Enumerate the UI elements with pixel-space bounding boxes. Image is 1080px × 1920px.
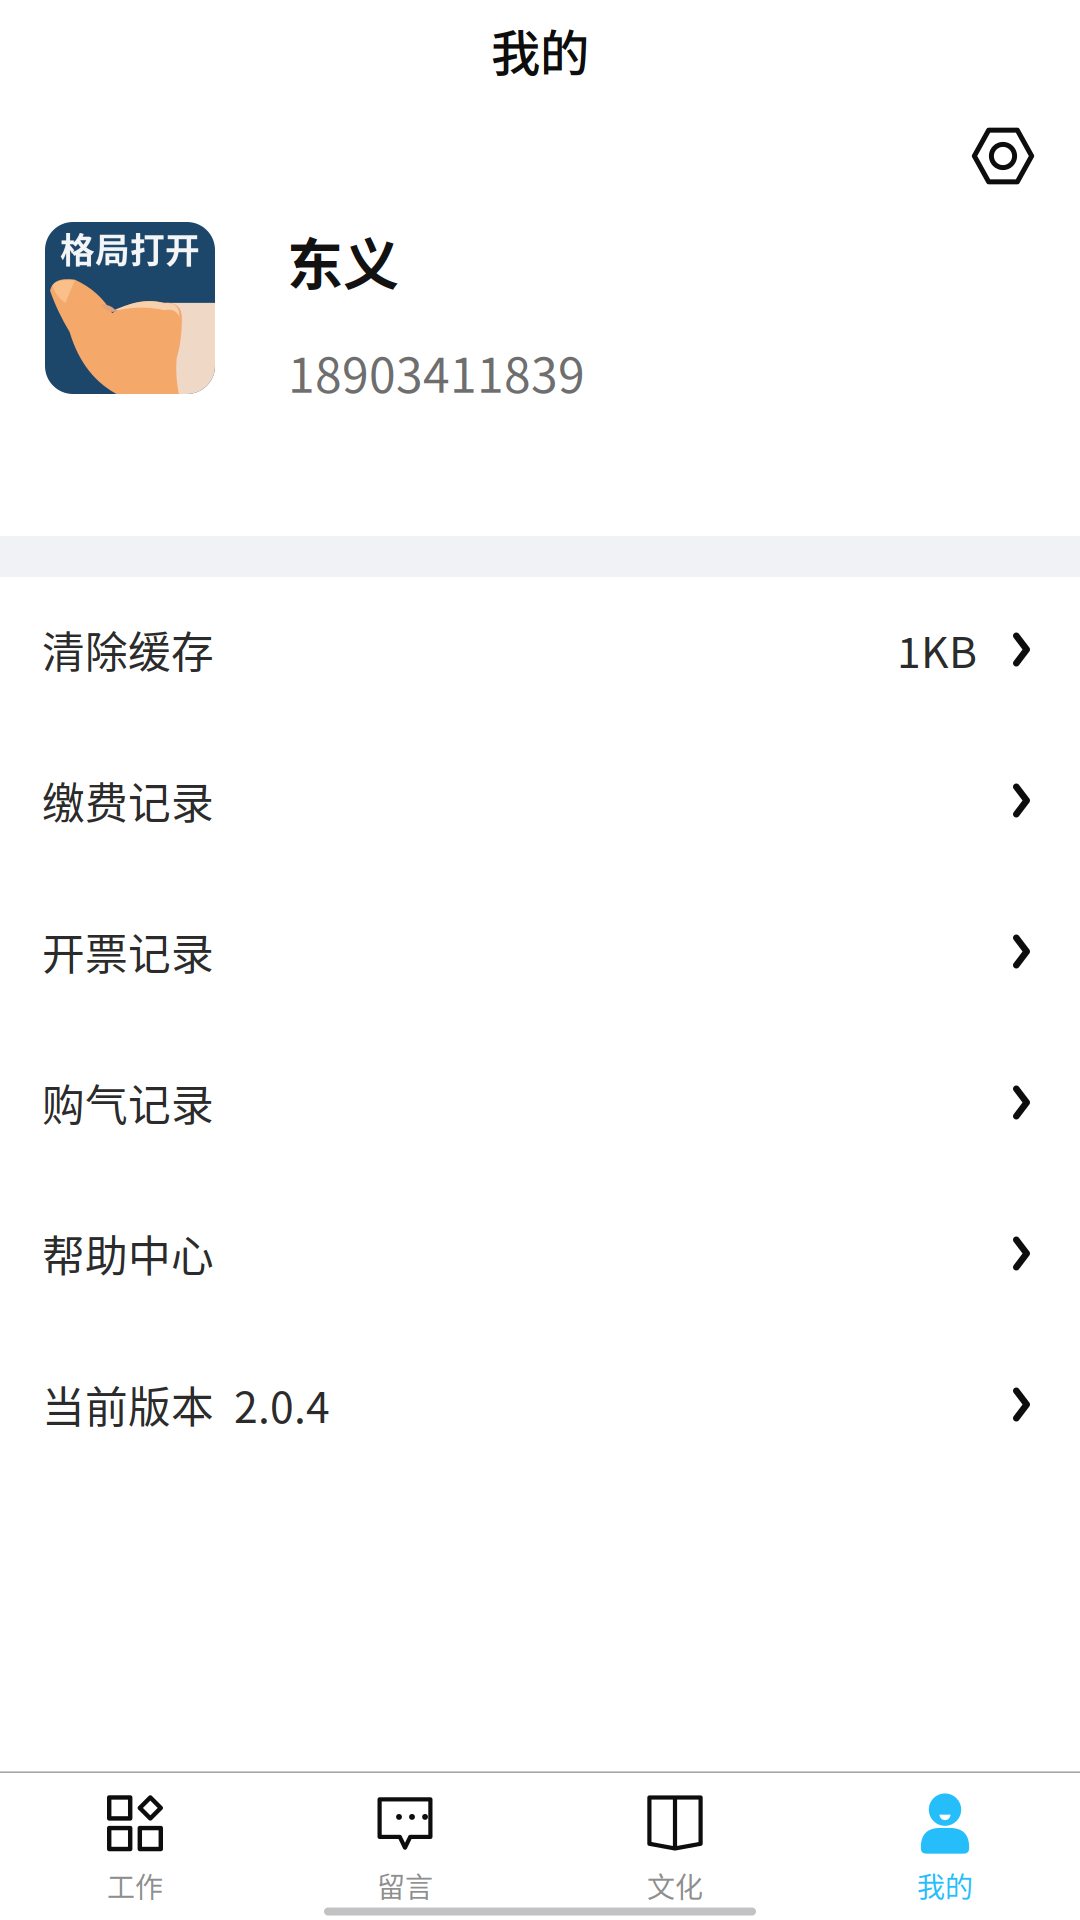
staticText: 我的 (491, 14, 589, 85)
button[interactable]: 当前版本 2.0.4 (0, 1332, 1080, 1483)
staticText: 帮助中心 (42, 1223, 214, 1284)
staticText: 购气记录 (42, 1072, 214, 1133)
staticText: 开票记录 (42, 921, 214, 982)
button[interactable]: Settings (947, 100, 1059, 212)
button[interactable]: 帮助中心 (0, 1181, 1080, 1332)
button[interactable]: 格局打开 (0, 222, 1080, 536)
staticText: 格局打开 (60, 223, 200, 273)
staticText: 18903411839 (288, 337, 585, 406)
button[interactable]: 文化 (540, 1773, 810, 1903)
staticText: 东义 (287, 220, 399, 301)
button[interactable]: 缴费记录 (0, 728, 1080, 879)
staticText: 我的 (917, 1865, 973, 1906)
button[interactable]: 清除缓存 (0, 577, 1080, 728)
button[interactable]: 开票记录 (0, 879, 1080, 1030)
staticText: 清除缓存 (42, 619, 214, 680)
button[interactable]: 购气记录 (0, 1030, 1080, 1181)
staticText: 当前版本 2.0.4 (42, 1374, 330, 1435)
staticText: 工作 (107, 1865, 163, 1906)
staticText: 留言 (377, 1865, 433, 1906)
button[interactable]: 我的 (810, 1773, 1080, 1903)
staticText: 缴费记录 (42, 770, 214, 831)
staticText: 1KB (897, 619, 977, 680)
button[interactable]: 工作 (0, 1773, 270, 1903)
button[interactable]: 留言 (270, 1773, 540, 1903)
staticText: 文化 (647, 1865, 703, 1906)
